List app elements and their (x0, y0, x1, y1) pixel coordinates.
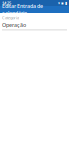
staticText: ▾ ▪ ▮ (58, 1, 67, 5)
staticText: 14:25 (2, 0, 11, 6)
staticText: Editar Entrada de calendário (2, 2, 43, 17)
staticText: Operação (2, 21, 26, 28)
staticText: Categoria (2, 15, 19, 20)
